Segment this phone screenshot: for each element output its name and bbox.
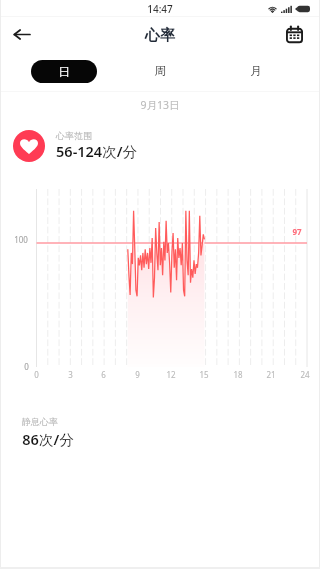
staticText: 24 xyxy=(300,369,310,380)
staticText: 56-124次/分 xyxy=(56,141,137,161)
button[interactable]: Calendar xyxy=(278,18,310,50)
staticText: 15 xyxy=(199,369,209,380)
button[interactable]: Back xyxy=(5,18,37,50)
staticText: 日 xyxy=(58,65,70,79)
staticText: 9 xyxy=(135,369,140,380)
button[interactable]: 周 xyxy=(112,52,208,90)
staticText: 9月13日 xyxy=(140,98,180,112)
staticText: 14:47 xyxy=(147,2,173,16)
staticText: 心率 xyxy=(145,26,175,45)
staticText: 心率范围 xyxy=(56,130,92,141)
staticText: 100 xyxy=(14,234,28,245)
staticText: 97 xyxy=(292,226,302,237)
staticText: 21 xyxy=(266,369,276,380)
staticText: 周 xyxy=(154,64,166,78)
staticText: 0 xyxy=(24,361,29,372)
staticText: 6 xyxy=(101,369,106,380)
button[interactable]: 月 xyxy=(208,52,304,90)
staticText: 0 xyxy=(34,369,39,380)
button[interactable]: 日 xyxy=(16,52,112,90)
staticText: 月 xyxy=(250,64,262,78)
staticText: 静息心率 xyxy=(22,416,58,427)
staticText: 12 xyxy=(166,369,176,380)
staticText: 18 xyxy=(233,369,243,380)
staticText: 3 xyxy=(68,369,73,380)
staticText: 86次/分 xyxy=(22,429,74,449)
